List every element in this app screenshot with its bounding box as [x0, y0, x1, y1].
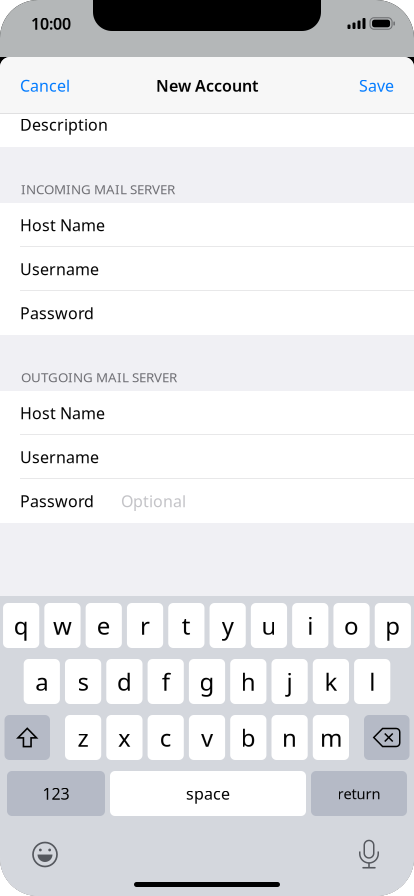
staticText: New Account: [156, 75, 258, 96]
staticText: 10:00: [31, 13, 71, 34]
staticText: Password: [20, 302, 94, 324]
staticText: OUTGOING MAIL SERVER: [21, 368, 177, 386]
staticText: 123: [42, 783, 69, 804]
button[interactable]: r: [127, 603, 163, 648]
staticText: q: [14, 610, 29, 641]
button[interactable]: Description: [0, 114, 414, 147]
staticText: t: [182, 610, 191, 641]
button[interactable]: o: [333, 603, 370, 648]
staticText: x: [118, 722, 131, 753]
button[interactable]: t: [168, 603, 204, 648]
button[interactable]: Password: [0, 291, 414, 335]
staticText: j: [287, 666, 293, 697]
staticText: m: [320, 722, 342, 753]
button[interactable]: c: [148, 715, 184, 760]
button[interactable]: d: [106, 659, 142, 704]
button[interactable]: Save: [347, 64, 414, 107]
button[interactable]: 123: [7, 771, 105, 816]
button[interactable]: return: [311, 771, 407, 816]
staticText: w: [53, 610, 72, 641]
button[interactable]: z: [65, 715, 101, 760]
button[interactable]: Cancel: [0, 64, 82, 107]
staticText: Username: [20, 446, 99, 468]
button[interactable]: s: [65, 659, 101, 704]
button[interactable]: u: [251, 603, 287, 648]
button[interactable]: a: [24, 659, 60, 704]
button[interactable]: e: [86, 603, 122, 648]
staticText: a: [35, 666, 48, 697]
staticText: Cancel: [20, 75, 70, 96]
button[interactable]: Host Name: [0, 203, 414, 247]
staticText: f: [162, 666, 170, 697]
button[interactable]: j: [271, 659, 308, 704]
button[interactable]: Shift: [4, 715, 50, 760]
button[interactable]: Username: [0, 435, 414, 479]
staticText: Save: [359, 75, 394, 96]
button[interactable]: k: [313, 659, 349, 704]
button[interactable]: Username: [0, 247, 414, 291]
staticText: o: [344, 610, 359, 641]
button[interactable]: m: [313, 715, 349, 760]
staticText: k: [324, 666, 337, 697]
staticText: e: [97, 610, 111, 641]
staticText: Optional: [121, 490, 186, 512]
staticText: p: [385, 610, 400, 641]
staticText: INCOMING MAIL SERVER: [21, 180, 175, 198]
staticText: d: [117, 666, 132, 697]
button[interactable]: i: [292, 603, 328, 648]
staticText: Password: [20, 490, 94, 512]
button[interactable]: Password: [0, 479, 414, 523]
button[interactable]: h: [230, 659, 266, 704]
staticText: n: [282, 722, 297, 753]
staticText: c: [160, 722, 172, 753]
button[interactable]: f: [148, 659, 184, 704]
button[interactable]: y: [210, 603, 246, 648]
button[interactable]: q: [3, 603, 39, 648]
button[interactable]: Host Name: [0, 391, 414, 435]
staticText: r: [140, 610, 150, 641]
button[interactable]: l: [354, 659, 390, 704]
staticText: b: [241, 722, 256, 753]
staticText: Username: [20, 258, 99, 280]
staticText: z: [78, 722, 89, 753]
staticText: y: [222, 610, 234, 641]
button[interactable]: Delete: [364, 715, 409, 760]
button[interactable]: b: [230, 715, 266, 760]
staticText: Host Name: [20, 402, 105, 424]
button[interactable]: space: [110, 771, 306, 816]
staticText: Host Name: [20, 214, 105, 236]
staticText: u: [261, 610, 276, 641]
button[interactable]: x: [106, 715, 142, 760]
staticText: return: [337, 784, 380, 803]
button[interactable]: Emoji keyboard: [0, 833, 58, 875]
button[interactable]: w: [44, 603, 81, 648]
button[interactable]: g: [189, 659, 225, 704]
staticText: g: [199, 666, 214, 697]
staticText: h: [241, 666, 256, 697]
button[interactable]: p: [375, 603, 411, 648]
staticText: i: [307, 610, 313, 641]
staticText: l: [369, 666, 375, 697]
button[interactable]: Dictate: [356, 832, 414, 876]
staticText: Description: [20, 114, 108, 135]
staticText: space: [186, 783, 230, 804]
staticText: s: [78, 666, 89, 697]
staticText: v: [201, 722, 213, 753]
button[interactable]: n: [271, 715, 308, 760]
button[interactable]: v: [189, 715, 225, 760]
